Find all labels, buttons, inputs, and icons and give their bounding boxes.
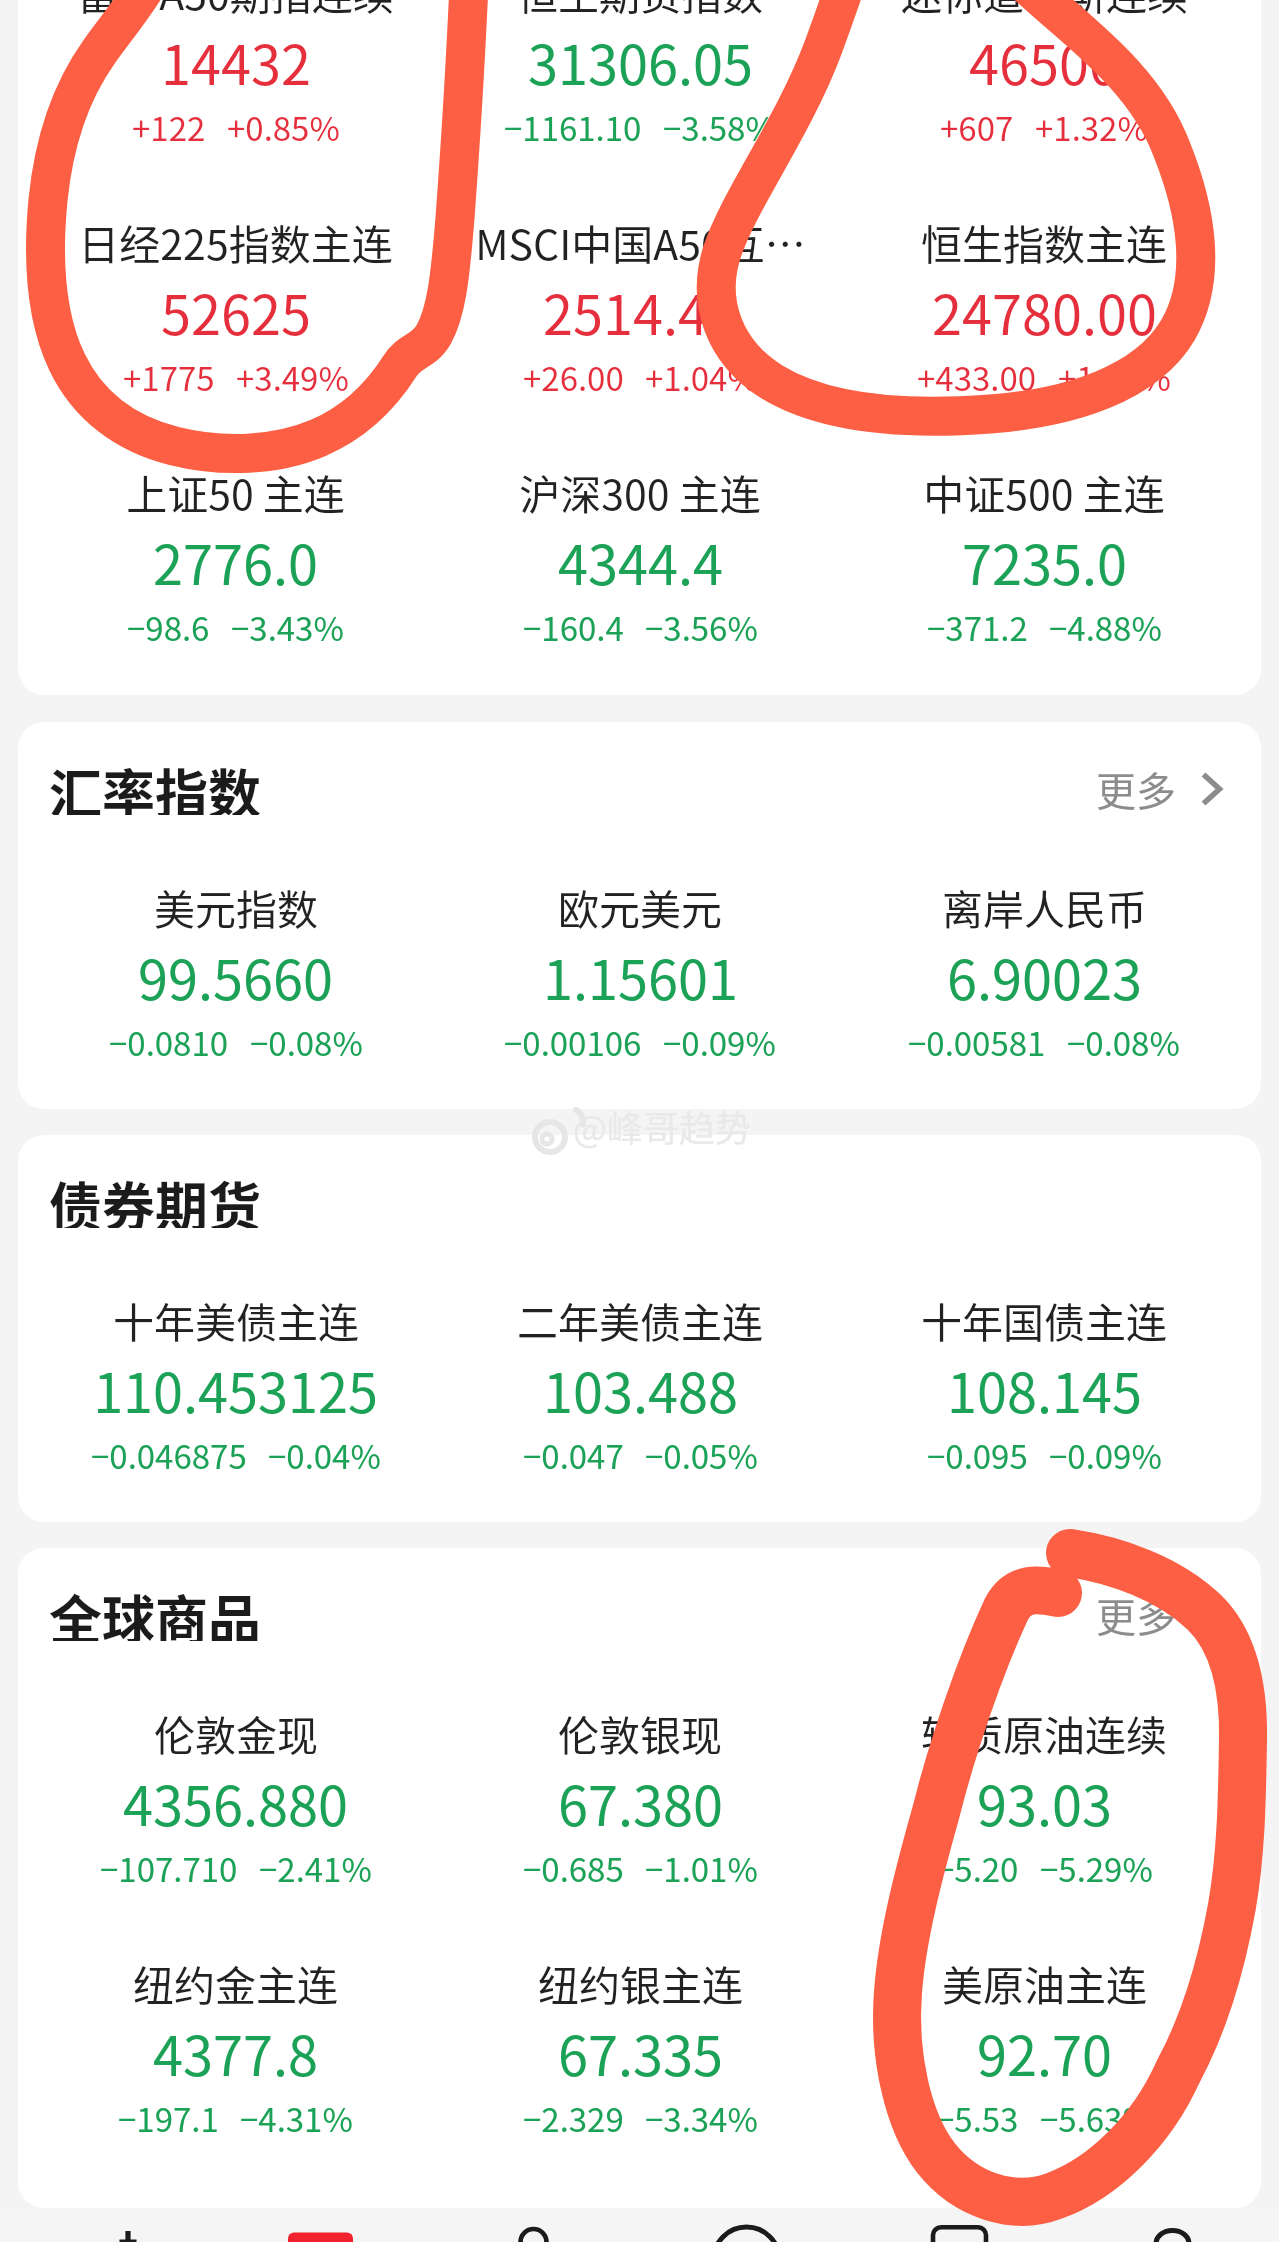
button[interactable]: MSCI中国A50互… [438, 212, 842, 401]
button[interactable]: 纽约金主连 [33, 1953, 438, 2142]
staticText: 103.488 [543, 1350, 738, 1428]
staticText: +1775 [123, 353, 215, 401]
staticText: 恒生指数主连 [921, 212, 1167, 271]
staticText: −371.2 [927, 603, 1028, 651]
staticText: 离岸人民币 [942, 877, 1147, 936]
staticText: 轻质原油连续 [921, 1703, 1167, 1762]
staticText: 1.15601 [543, 937, 738, 1015]
staticText: 伦敦金现 [154, 1703, 318, 1762]
staticText: 纽约金主连 [133, 1953, 338, 2012]
staticText: −1.01% [645, 1844, 758, 1892]
staticText: −0.0810 [109, 1018, 229, 1066]
staticText: 恒生期货指数 [517, 0, 763, 21]
staticText: +607 [940, 103, 1014, 151]
button[interactable]: 资讯 [853, 2208, 1066, 2242]
button[interactable]: 迷你道琼斯连续 [842, 0, 1246, 151]
staticText: 110.453125 [93, 1350, 378, 1428]
staticText: −5.20 [936, 1844, 1019, 1892]
button[interactable]: 轻质原油连续 [842, 1703, 1246, 1892]
staticText: 99.5660 [138, 937, 333, 1015]
staticText: −3.56% [645, 603, 758, 651]
button[interactable]: 恒生期货指数 [438, 0, 842, 151]
button[interactable]: 行情 [214, 2208, 427, 2242]
staticText: −0.00581 [908, 1018, 1046, 1066]
staticText: 沪深300 主连 [519, 462, 761, 521]
staticText: 迷你道琼斯连续 [901, 0, 1188, 21]
staticText: +3.49% [236, 353, 349, 401]
button[interactable]: 恒生指数主连 [842, 212, 1246, 401]
button[interactable]: 伦敦金现 [33, 1703, 438, 1892]
button[interactable]: 更多 [1076, 755, 1222, 813]
staticText: 2776.0 [153, 522, 318, 600]
staticText: +1.04% [645, 353, 758, 401]
button[interactable]: 离岸人民币 [842, 877, 1246, 1066]
staticText: 7235.0 [962, 522, 1127, 600]
staticText: 债券期货 [49, 1166, 261, 1228]
staticText: 31306.05 [528, 22, 753, 100]
staticText: 4344.4 [558, 522, 723, 600]
staticText: 日经225指数主连 [78, 212, 393, 271]
staticText: −107.710 [100, 1844, 238, 1892]
staticText: 67.380 [558, 1763, 723, 1841]
staticText: 6.90023 [947, 937, 1142, 1015]
button[interactable]: 十年国债主连 [842, 1290, 1246, 1479]
button[interactable]: 沪深300 主连 [438, 462, 842, 651]
staticText: 2514.40 [543, 272, 738, 350]
staticText: 欧元美元 [558, 877, 722, 936]
staticText: 52625 [161, 272, 311, 350]
staticText: −0.00106 [504, 1018, 642, 1066]
staticText: −4.88% [1049, 603, 1162, 651]
staticText: −5.29% [1040, 1844, 1153, 1892]
staticText: 十年国债主连 [921, 1290, 1167, 1349]
staticText: 纽约银主连 [538, 1953, 743, 2012]
staticText: −197.1 [118, 2094, 219, 2142]
staticText: −5.53 [936, 2094, 1019, 2142]
button[interactable]: 欧元美元 [438, 877, 842, 1066]
staticText: −0.04% [268, 1431, 381, 1479]
button[interactable]: 伦敦银现 [438, 1703, 842, 1892]
staticText: −0.09% [1049, 1431, 1162, 1479]
staticText: −0.046875 [91, 1431, 247, 1479]
staticText: @峰哥趋势 [573, 1100, 752, 1152]
staticText: 全球商品 [49, 1579, 261, 1641]
button[interactable]: 二年美债主连 [438, 1290, 842, 1479]
staticText: +1.78% [1058, 353, 1171, 401]
button[interactable]: 日经225指数主连 [33, 212, 438, 401]
staticText: 美原油主连 [942, 1953, 1147, 2012]
staticText: −0.047 [523, 1431, 624, 1479]
button[interactable]: 上证50 主连 [33, 462, 438, 651]
staticText: 伦敦银现 [558, 1703, 722, 1762]
staticText: 汇率指数 [49, 753, 261, 815]
button[interactable]: 美原油主连 [842, 1953, 1246, 2142]
button[interactable]: 交易 [427, 2208, 640, 2242]
staticText: 67.335 [558, 2013, 723, 2091]
staticText: −5.63% [1040, 2094, 1153, 2142]
staticText: 92.70 [977, 2013, 1112, 2091]
staticText: +122 [132, 103, 206, 151]
staticText: 美元指数 [154, 877, 318, 936]
button[interactable]: 我的 [1066, 2208, 1279, 2242]
staticText: 二年美债主连 [517, 1290, 763, 1349]
staticText: 富时A50期指连续 [77, 0, 394, 21]
staticText: 4356.880 [123, 1763, 348, 1841]
button[interactable]: 美元指数 [33, 877, 438, 1066]
button[interactable]: 纽约银主连 [438, 1953, 842, 2142]
button[interactable]: 十年美债主连 [33, 1290, 438, 1479]
staticText: 108.145 [947, 1350, 1142, 1428]
staticText: 更多 [1096, 760, 1176, 818]
staticText: −98.6 [127, 603, 210, 651]
staticText: −2.41% [259, 1844, 372, 1892]
staticText: +433.00 [917, 353, 1037, 401]
staticText: 中证500 主连 [923, 462, 1165, 521]
staticText: 14432 [161, 22, 311, 100]
staticText: −3.34% [645, 2094, 758, 2142]
button[interactable]: 中证500 主连 [842, 462, 1246, 651]
button[interactable]: 社区 [640, 2208, 853, 2242]
staticText: 24780.00 [932, 272, 1157, 350]
staticText: −0.095 [927, 1431, 1028, 1479]
button[interactable]: 自选 [0, 2208, 214, 2242]
button[interactable]: 更多 [1076, 1581, 1222, 1639]
staticText: MSCI中国A50互… [475, 212, 806, 271]
staticText: −0.08% [250, 1018, 363, 1066]
button[interactable]: 富时A50期指连续 [33, 0, 438, 151]
